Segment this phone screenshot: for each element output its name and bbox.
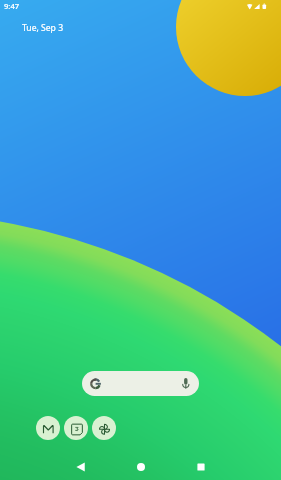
button[interactable]: Back xyxy=(50,454,111,480)
staticText: Tue, Sep 3 xyxy=(22,22,64,34)
button[interactable]: Gmail xyxy=(36,416,60,440)
button[interactable]: Search xyxy=(82,371,199,396)
button[interactable]: Photos xyxy=(92,416,116,440)
button[interactable]: Home xyxy=(111,454,171,480)
staticText: 9:47 xyxy=(4,1,20,11)
button[interactable]: Recents xyxy=(171,454,231,480)
button[interactable]: Calendar xyxy=(64,416,88,440)
